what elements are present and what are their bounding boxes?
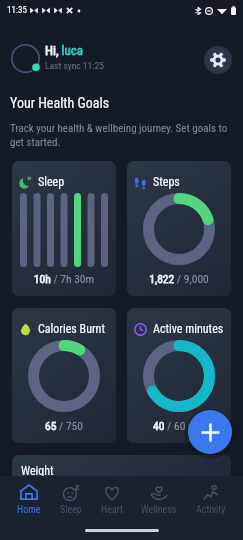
staticText: Last sync 11:25 [45, 60, 104, 71]
staticText: Your Health Goals [10, 95, 110, 111]
staticText: Calories Burnt [38, 322, 105, 336]
staticText: Heart [101, 504, 123, 516]
button[interactable]: Settings [204, 46, 232, 74]
staticText: Track your health & wellbeing journey. S… [10, 122, 234, 149]
button[interactable]: Weight [12, 455, 231, 495]
button[interactable]: Home [15, 484, 43, 516]
staticText: Activity [196, 504, 226, 516]
staticText: Sleep [38, 175, 65, 189]
staticText: Active minutes [153, 322, 224, 336]
staticText: 65 / 750 [12, 419, 116, 432]
button[interactable]: Heart [99, 484, 125, 516]
staticText: Wellness [141, 504, 177, 516]
staticText: Sleep [60, 504, 82, 516]
staticText: Hi, luca [45, 43, 84, 58]
button[interactable]: Calories Burnt [12, 308, 116, 443]
staticText: 1,822 / 9,000 [127, 272, 231, 285]
staticText: 11:35 [7, 5, 27, 16]
staticText: 10h / 7h 30m [12, 272, 116, 285]
button[interactable]: Sleep [12, 161, 116, 296]
staticText: 40 / 60 min [127, 419, 231, 432]
staticText: Home [17, 504, 41, 516]
button[interactable]: Add [188, 410, 232, 454]
button[interactable]: Activity [194, 484, 228, 516]
button[interactable]: Sleep [58, 484, 84, 516]
button[interactable]: Steps [127, 161, 231, 296]
staticText: Weight [21, 464, 54, 478]
staticText: Steps [153, 175, 180, 189]
button[interactable]: Active minutes [127, 308, 231, 443]
button[interactable]: Wellness [139, 484, 179, 516]
